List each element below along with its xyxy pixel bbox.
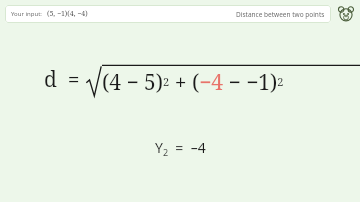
staticText: (4 − 5)2 + (−4 − −1)2: [102, 68, 284, 97]
staticText: (5, −1)(4, −4): [47, 9, 88, 19]
button[interactable]: Your input:: [5, 5, 331, 23]
staticText: Distance between two points: [236, 10, 325, 19]
staticText: d =: [44, 65, 80, 94]
staticText: Y2 = –4: [155, 138, 206, 158]
staticText: Your input:: [11, 10, 42, 18]
button[interactable]: App logo: [335, 3, 357, 25]
